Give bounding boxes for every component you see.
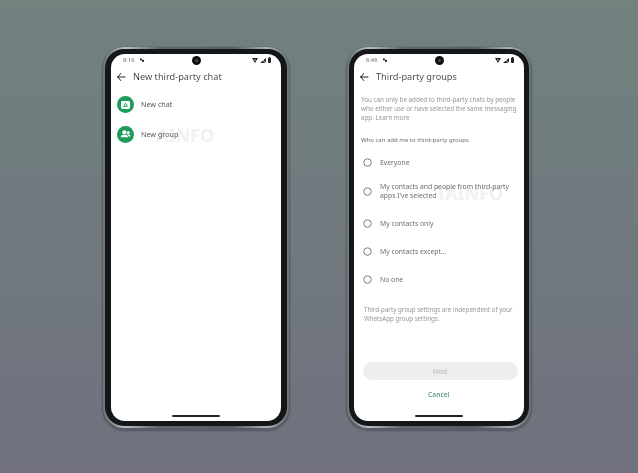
staticText: My contacts and people from third-party … — [380, 182, 512, 200]
button[interactable]: My contacts only — [354, 212, 524, 234]
staticText: New third-party chat — [133, 70, 222, 83]
button[interactable]: Back — [113, 69, 128, 84]
staticText: Who can add me to third-party groups — [361, 136, 469, 144]
staticText: No one — [380, 275, 512, 284]
button[interactable]: No one — [354, 268, 524, 290]
staticText: My contacts except... — [380, 247, 512, 256]
button[interactable]: New chat — [111, 89, 281, 119]
staticText: You can only be added to third-party cha… — [361, 95, 520, 122]
staticText: 8:16 — [123, 56, 135, 64]
button[interactable]: Back — [356, 69, 371, 84]
staticText: TAINFO — [436, 181, 504, 206]
staticText: Cancel — [428, 390, 450, 399]
staticText: 6:46 — [366, 56, 378, 64]
staticText: AINFO — [156, 123, 215, 148]
button[interactable]: My contacts except... — [354, 240, 524, 262]
button[interactable]: Next — [363, 362, 518, 380]
staticText: Everyone — [380, 158, 512, 167]
staticText: My contacts only — [380, 219, 512, 228]
button[interactable]: My contacts and people from third-party … — [354, 180, 524, 202]
button[interactable]: New group — [111, 119, 281, 149]
staticText: New chat — [141, 99, 173, 109]
button[interactable]: Cancel — [354, 387, 524, 401]
staticText: New group — [141, 129, 179, 139]
staticText: Third-party groups — [376, 70, 457, 83]
staticText: Third-party group settings are independe… — [364, 305, 516, 323]
button[interactable]: Everyone — [354, 151, 524, 173]
staticText: Next — [433, 367, 448, 376]
